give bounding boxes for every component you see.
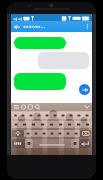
button[interactable]: Back	[11, 21, 22, 32]
button[interactable]: k	[74, 121, 83, 128]
button[interactable]: g	[47, 121, 56, 128]
button[interactable]: Backspace	[80, 130, 91, 137]
button[interactable]: .	[71, 139, 79, 148]
button[interactable]: Space	[33, 139, 71, 148]
button[interactable]: m	[72, 130, 80, 137]
button[interactable]: l	[83, 121, 92, 128]
button[interactable]: a	[12, 121, 20, 128]
button[interactable]: b	[56, 130, 64, 137]
button[interactable]	[14, 37, 66, 49]
button[interactable]: j	[65, 121, 74, 128]
button[interactable]: i	[67, 112, 75, 119]
button[interactable]: w	[19, 112, 27, 119]
button[interactable]: q	[12, 112, 19, 119]
button[interactable]: x	[32, 130, 40, 137]
button[interactable]	[14, 73, 66, 90]
button[interactable]: v	[48, 130, 56, 137]
button[interactable]: u	[59, 112, 67, 119]
button[interactable]: Search	[22, 21, 83, 32]
button[interactable]: Shift	[12, 130, 24, 137]
button[interactable]: r	[35, 112, 43, 119]
button[interactable]: Symbols	[12, 139, 25, 148]
button[interactable]: h	[56, 121, 65, 128]
button[interactable]: ,	[25, 139, 33, 148]
button[interactable]	[38, 52, 89, 69]
button[interactable]: More options	[83, 21, 92, 32]
button[interactable]: y	[51, 112, 59, 119]
button[interactable]: Enter	[79, 139, 91, 148]
button[interactable]: o	[75, 112, 83, 119]
button[interactable]: n	[64, 130, 72, 137]
button[interactable]: t	[43, 112, 51, 119]
button[interactable]: d	[29, 121, 38, 128]
button[interactable]: f	[38, 121, 47, 128]
button[interactable]: c	[40, 130, 48, 137]
button[interactable]: p	[83, 112, 91, 119]
button[interactable]: z	[24, 130, 32, 137]
button[interactable]: e	[27, 112, 35, 119]
button[interactable]: s	[20, 121, 29, 128]
button[interactable]: Send	[79, 84, 90, 95]
